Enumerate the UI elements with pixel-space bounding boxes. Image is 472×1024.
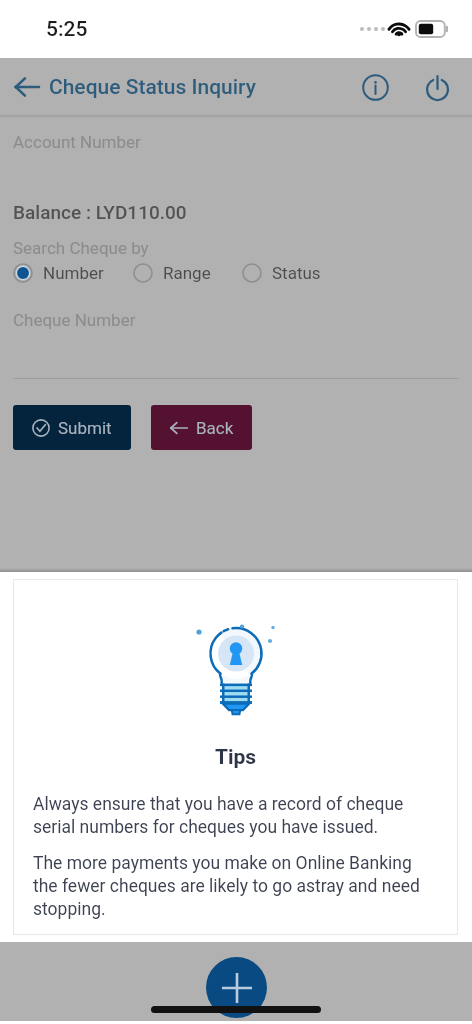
button[interactable]: Add xyxy=(206,957,267,1018)
staticText: Always ensure that you have a record of … xyxy=(33,794,440,837)
button[interactable]: Number xyxy=(13,263,104,283)
staticText: Account Number xyxy=(13,132,141,152)
staticText: Number xyxy=(43,263,104,283)
staticText: Cheque Status Inquiry xyxy=(49,75,256,100)
button[interactable]: Information xyxy=(352,64,398,110)
staticText: Back xyxy=(196,418,234,438)
button[interactable]: Logout xyxy=(414,64,460,110)
button[interactable]: Back xyxy=(6,66,48,108)
button[interactable]: Submit xyxy=(13,405,131,450)
button[interactable]: Status xyxy=(242,263,321,283)
staticText: Tips xyxy=(13,745,458,770)
staticText: Range xyxy=(163,263,211,283)
button[interactable]: Range xyxy=(133,263,211,283)
staticText: The more payments you make on Online Ban… xyxy=(33,853,440,919)
button[interactable]: Back xyxy=(151,405,252,450)
staticText: Search Cheque by xyxy=(13,238,149,258)
staticText: Status xyxy=(272,263,321,283)
staticText: Balance : LYD110.00 xyxy=(13,201,187,223)
staticText: Cheque Number xyxy=(13,310,136,330)
staticText: 5:25 xyxy=(46,17,88,42)
staticText: Submit xyxy=(58,418,112,438)
